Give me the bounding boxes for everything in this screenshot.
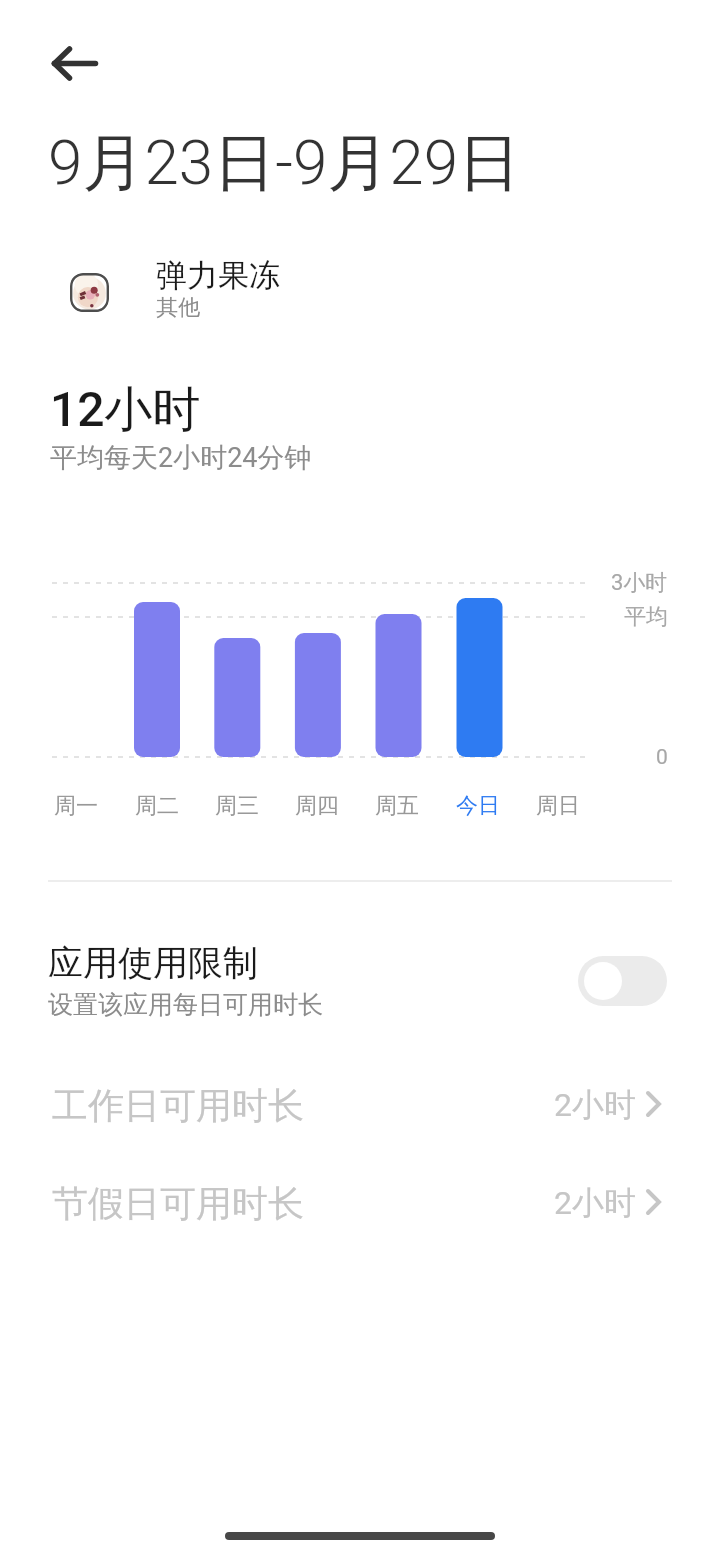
staticText: 工作日可用时长 <box>52 1083 304 1128</box>
button[interactable] <box>70 273 109 312</box>
staticText: 平均 <box>624 603 668 631</box>
staticText: 2小时 <box>554 1085 636 1125</box>
staticText: 周一 <box>54 792 98 820</box>
staticText: 0 <box>656 745 668 770</box>
staticText: 2小时 <box>554 1183 636 1223</box>
staticText: 12小时 <box>50 380 201 440</box>
staticText: 周五 <box>375 792 419 820</box>
staticText: 9月23日-9月29日 <box>48 124 521 202</box>
button[interactable] <box>43 32 107 96</box>
staticText: 弹力果冻 <box>156 256 280 295</box>
staticText: 周四 <box>295 792 339 820</box>
staticText: 3小时 <box>611 569 668 597</box>
button[interactable] <box>578 956 667 1006</box>
staticText: 平均每天2小时24分钟 <box>50 441 312 475</box>
staticText: 周三 <box>215 792 259 820</box>
staticText: 其他 <box>156 294 200 322</box>
staticText: 应用使用限制 <box>48 941 258 985</box>
staticText: 周日 <box>536 792 580 820</box>
button[interactable] <box>40 1064 680 1144</box>
staticText: 节假日可用时长 <box>52 1181 304 1226</box>
staticText: 设置该应用每日可用时长 <box>48 989 323 1020</box>
staticText: 周二 <box>135 792 179 820</box>
button[interactable] <box>40 1162 680 1242</box>
staticText: 今日 <box>456 792 500 820</box>
